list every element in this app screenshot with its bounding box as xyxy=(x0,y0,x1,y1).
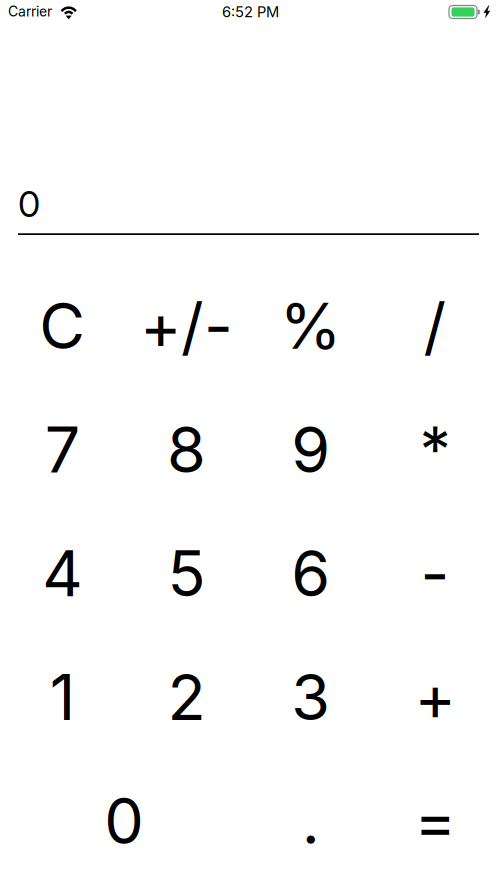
staticText: 2 xyxy=(167,659,205,735)
staticText: = xyxy=(414,783,455,859)
button[interactable]: = xyxy=(373,759,497,883)
staticText: . xyxy=(302,783,320,859)
staticText: 7 xyxy=(45,412,80,488)
button[interactable]: +/- xyxy=(124,264,248,388)
button[interactable]: - xyxy=(373,512,497,635)
button[interactable]: 6 xyxy=(248,512,373,635)
staticText: 8 xyxy=(167,412,206,488)
button[interactable]: 9 xyxy=(248,388,373,512)
button[interactable]: * xyxy=(373,388,497,512)
button[interactable]: 8 xyxy=(124,388,248,512)
button[interactable]: 5 xyxy=(124,512,248,635)
staticText: % xyxy=(280,288,342,364)
staticText: - xyxy=(420,536,449,611)
staticText: C xyxy=(39,288,85,364)
staticText: + xyxy=(414,659,455,735)
button[interactable]: 1 xyxy=(0,635,124,759)
staticText: +/- xyxy=(140,288,233,364)
staticText: * xyxy=(419,412,450,488)
staticText: 3 xyxy=(291,659,330,735)
staticText: Carrier xyxy=(8,3,52,20)
staticText: 6 xyxy=(291,536,330,611)
button[interactable]: . xyxy=(248,759,373,883)
staticText: 0 xyxy=(18,182,40,226)
staticText: 4 xyxy=(42,536,82,611)
button[interactable]: 7 xyxy=(0,388,124,512)
staticText: / xyxy=(423,288,446,364)
button[interactable]: 3 xyxy=(248,635,373,759)
staticText: 1 xyxy=(50,659,75,735)
button[interactable]: C xyxy=(0,264,124,388)
staticText: 5 xyxy=(167,536,205,611)
button[interactable]: + xyxy=(373,635,497,759)
button[interactable]: 0 xyxy=(0,759,248,883)
button[interactable]: / xyxy=(373,264,497,388)
staticText: 0 xyxy=(104,783,144,859)
button[interactable]: % xyxy=(248,264,373,388)
staticText: 6:52 PM xyxy=(222,3,279,21)
staticText: 9 xyxy=(291,412,330,488)
button[interactable]: 2 xyxy=(124,635,248,759)
button[interactable]: 4 xyxy=(0,512,124,635)
